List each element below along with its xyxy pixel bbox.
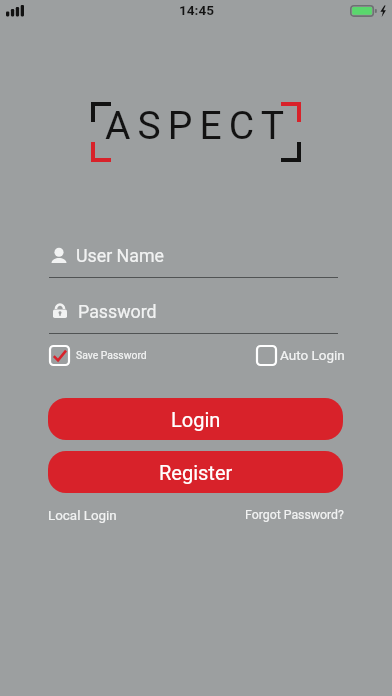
other: Battery charging	[350, 5, 386, 17]
button[interactable]: Login	[48, 398, 343, 440]
button[interactable]: Local Login	[48, 508, 117, 524]
button[interactable]: Register	[48, 451, 343, 493]
staticText: Auto Login	[280, 347, 345, 363]
staticText: Password	[78, 301, 157, 322]
other: Signal strength	[6, 5, 24, 17]
staticText: 14:45	[179, 2, 215, 18]
staticText: Local Login	[48, 508, 117, 524]
staticText: Login	[171, 408, 221, 431]
staticText: User Name	[76, 245, 165, 266]
button[interactable]: Auto Login	[256, 344, 345, 366]
button[interactable]: Forgot Password?	[245, 508, 344, 522]
staticText: Forgot Password?	[245, 508, 344, 522]
staticText: Save Password	[76, 349, 147, 361]
button[interactable]: Save Password	[49, 344, 147, 366]
staticText: ASPECT	[105, 103, 292, 149]
staticText: Register	[159, 461, 233, 484]
